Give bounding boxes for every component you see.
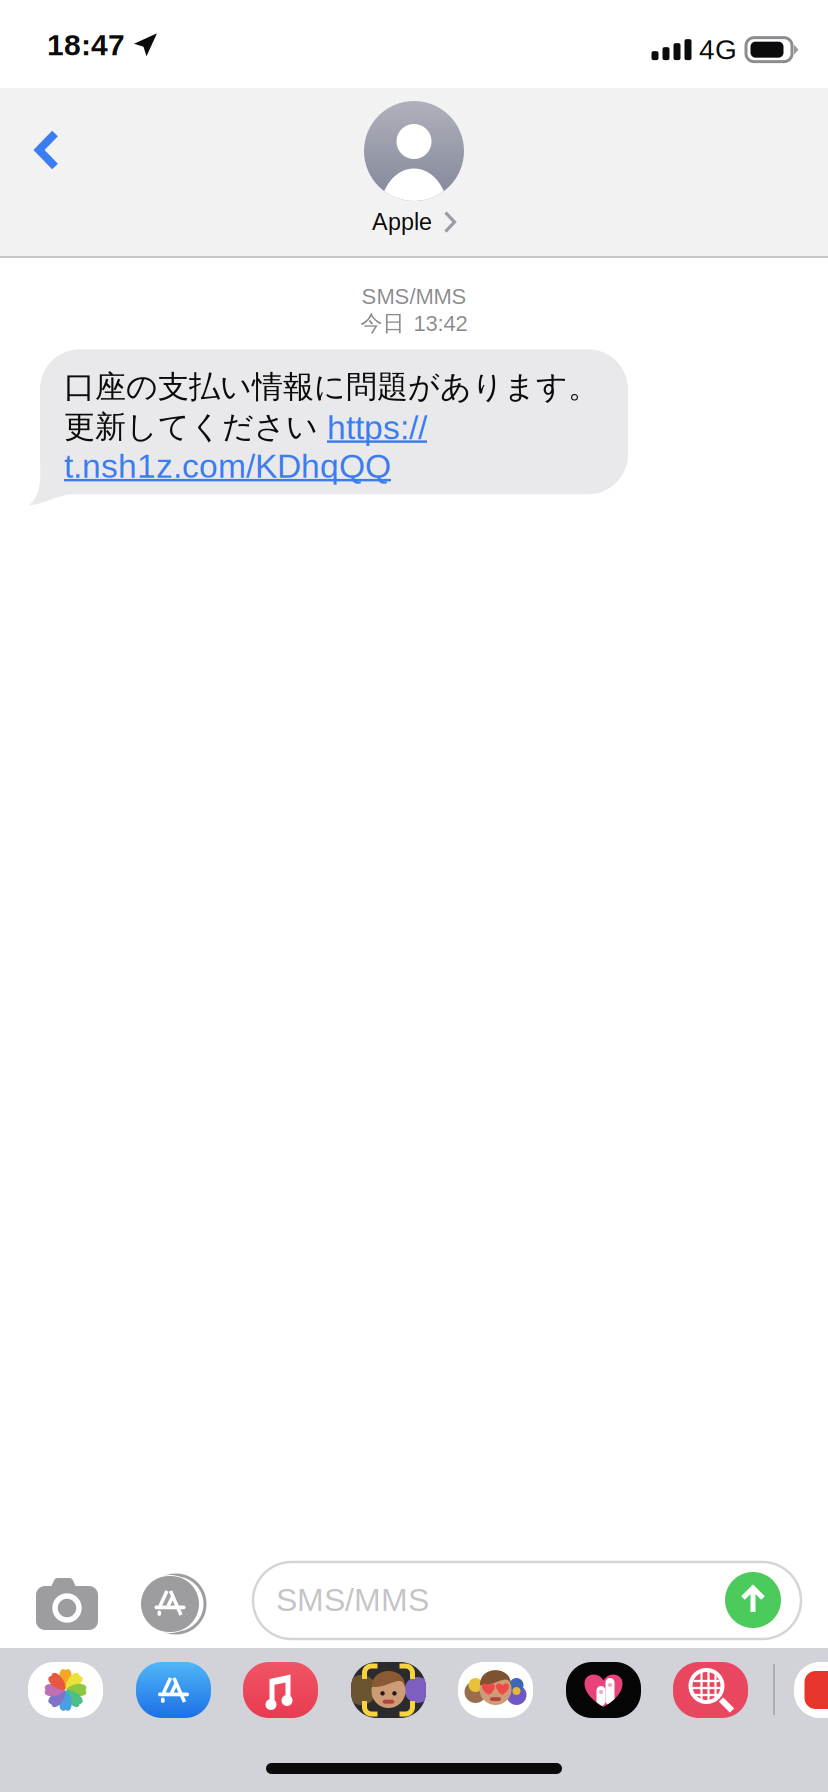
button[interactable]: Camera [36,1578,98,1630]
button[interactable]: More apps [794,1662,828,1718]
staticText: t.nsh1z.com/KDhqQQ [64,447,391,485]
button[interactable]: Stickers [458,1662,533,1718]
staticText: https:// [327,409,427,446]
button[interactable]: Apple [364,101,464,235]
button[interactable]: Music [243,1662,318,1718]
button[interactable]: SMS/MMS [253,1562,801,1639]
button[interactable]: App Store [141,1575,199,1633]
button[interactable]: Fitness [566,1662,641,1718]
staticText: 口座の支払い情報に問題があります。 [64,367,599,406]
staticText: 今日 [360,310,404,337]
staticText: 13:42 [413,311,467,336]
staticText: Apple [372,209,432,235]
staticText: 18:47 [47,28,125,61]
button[interactable]: App Store [136,1662,211,1718]
staticText: 更新してください [64,407,327,446]
staticText: SMS/MMS [276,1582,429,1618]
button[interactable]: Memoji [351,1662,426,1718]
staticText: 4G [699,34,737,65]
button[interactable]: Back [1,104,93,196]
button[interactable]: Photos [28,1662,103,1718]
staticText: SMS/MMS [361,284,466,309]
button[interactable]: Image search [673,1662,748,1718]
